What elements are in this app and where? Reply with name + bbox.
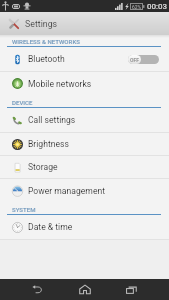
button[interactable]: Recents (114, 279, 148, 300)
staticText: Call settings (28, 115, 76, 125)
staticText: Date & time (28, 222, 73, 232)
staticText: Power management (28, 186, 105, 196)
staticText: WIRELESS & NETWORKS (12, 38, 80, 45)
staticText: Brightness (28, 139, 69, 149)
button[interactable]: Bluetooth on/off (128, 55, 159, 64)
staticText: OFF (130, 57, 139, 63)
staticText: Bluetooth (28, 54, 65, 64)
staticText: Settings (25, 19, 58, 29)
button[interactable]: Power management (0, 179, 169, 202)
staticText: DEVICE (12, 99, 33, 106)
button[interactable]: Date & time (0, 215, 169, 239)
staticText: Mobile networks (28, 79, 92, 89)
button[interactable]: Bluetooth (0, 47, 169, 71)
button[interactable]: Settings (0, 12, 169, 35)
button[interactable]: Call settings (0, 108, 169, 132)
staticText: 62% (132, 4, 142, 10)
staticText: Storage (28, 162, 58, 172)
button[interactable]: Home (68, 279, 102, 300)
staticText: 00:03 (147, 2, 167, 11)
staticText: SYSTEM (12, 206, 36, 213)
button[interactable]: Mobile networks (0, 72, 169, 95)
button[interactable]: Brightness (0, 133, 169, 155)
button[interactable]: Storage (0, 156, 169, 178)
button[interactable]: Back (20, 279, 54, 300)
